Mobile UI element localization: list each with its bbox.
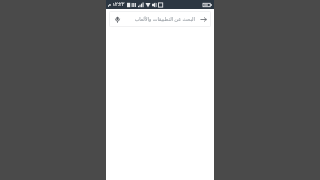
button[interactable]: Back (198, 14, 208, 24)
button[interactable]: Voice search (112, 14, 122, 24)
button[interactable]: Voice search (109, 11, 211, 27)
staticText: ١٢:٢٢ م (108, 1, 125, 8)
staticText: البحث عن التطبيقات والألعاب (134, 16, 195, 23)
